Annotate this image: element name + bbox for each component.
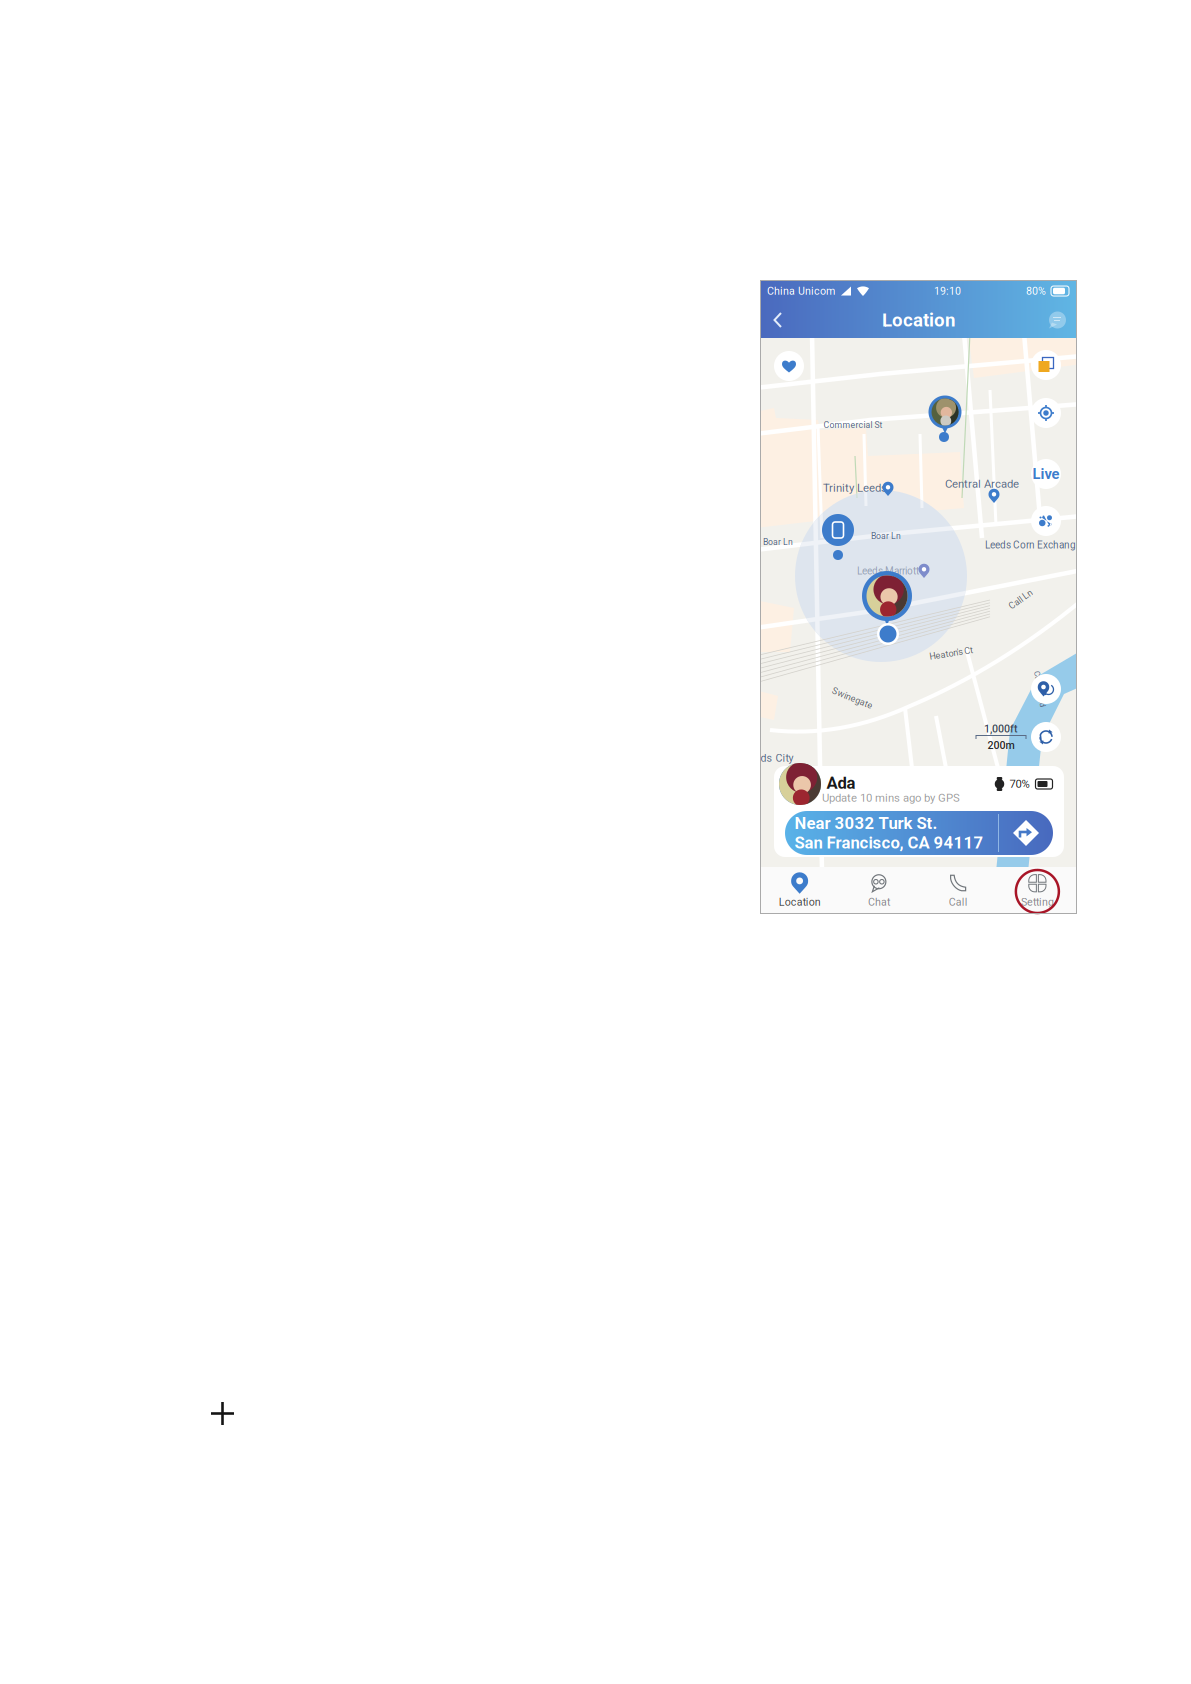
staticText: Central Rd [1006, 493, 1043, 503]
staticText: Trinity Leeds [823, 481, 887, 495]
staticText: Call [949, 896, 968, 908]
staticText: Heaton's Ct [921, 653, 965, 663]
button[interactable]: Setting [998, 867, 1077, 914]
button[interactable]: Near 3032 Turk St. [785, 811, 1053, 855]
staticText: Leeds Marriott [857, 565, 919, 577]
button[interactable]: Locate me [1031, 398, 1061, 428]
staticText: Boar Ln [871, 531, 901, 541]
staticText: Ada [826, 773, 855, 793]
button[interactable]: Chat [839, 867, 918, 914]
staticText: eds City [754, 752, 793, 764]
staticText: 19:10 [934, 285, 961, 297]
button[interactable]: Location [760, 867, 839, 914]
staticText: Leeds Corn Exchange [985, 539, 1081, 551]
staticText: China Unicom [767, 285, 835, 297]
staticText: Swinegate [871, 710, 914, 721]
staticText: Update 10 mins ago by GPS [822, 791, 960, 805]
staticText: Central Arcade [945, 477, 1019, 491]
button[interactable]: Refresh [1031, 722, 1061, 752]
staticText: Boar Ln [763, 537, 793, 547]
button[interactable]: Live tracking [1031, 459, 1061, 489]
button[interactable]: Walk history [1031, 506, 1061, 536]
staticText: 200m [987, 739, 1014, 751]
staticText: Setting [1021, 896, 1054, 908]
button[interactable]: Map layers [1031, 350, 1061, 380]
staticText: Location [779, 896, 821, 908]
button[interactable]: Back [760, 302, 796, 338]
button[interactable]: Favourites [774, 351, 804, 381]
staticText: Location [882, 309, 955, 331]
staticText: Call Ln [989, 654, 1016, 665]
staticText: Chat [868, 896, 890, 908]
staticText: 70% [1009, 777, 1029, 791]
button[interactable]: Call [918, 867, 998, 914]
staticText: Near 3032 Turk St. [794, 813, 937, 833]
staticText: 1,000ft [984, 722, 1018, 735]
staticText: San Francisco, CA 94117 [794, 833, 983, 852]
button[interactable]: Place history [1031, 674, 1061, 704]
staticText: Live [1032, 465, 1059, 483]
staticText: 80% [1026, 285, 1046, 297]
button[interactable]: Messages [1038, 302, 1077, 337]
staticText: Commercial St [823, 420, 882, 430]
